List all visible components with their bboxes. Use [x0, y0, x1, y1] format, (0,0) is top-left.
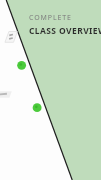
staticText: COMPLETE	[29, 13, 72, 23]
button[interactable]: COMPLETE	[29, 13, 101, 37]
button[interactable]: Class overview preview	[0, 0, 101, 180]
staticText: CLASS OVERVIEW	[29, 25, 101, 37]
